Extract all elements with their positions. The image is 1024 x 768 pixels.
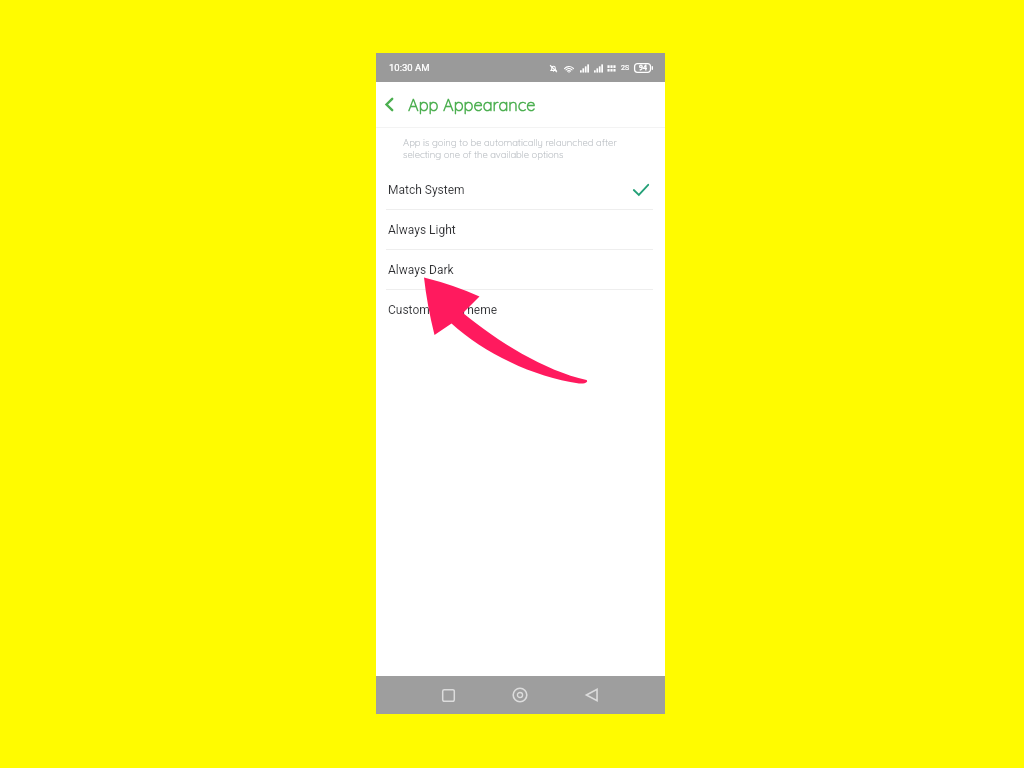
staticText: App is going to be automatically relaunc…: [403, 136, 643, 161]
staticText: Always Dark: [388, 263, 454, 277]
staticText: Match System: [388, 183, 465, 197]
staticText: App Appearance: [408, 94, 536, 115]
staticText: Always Light: [388, 223, 456, 237]
button[interactable]: Always Dark: [376, 250, 665, 289]
button[interactable]: Back: [576, 679, 608, 711]
button[interactable]: Navigate up: [376, 82, 403, 127]
button[interactable]: Custom Dark Theme: [376, 290, 665, 329]
button[interactable]: Match System: [376, 170, 665, 209]
button[interactable]: Home: [504, 679, 536, 711]
staticText: 94: [639, 64, 647, 72]
staticText: Custom Dark Theme: [388, 303, 498, 317]
staticText: 2S: [621, 64, 630, 72]
staticText: 10:30 AM: [389, 62, 430, 73]
button[interactable]: Recents: [432, 679, 464, 711]
button[interactable]: Always Light: [376, 210, 665, 249]
